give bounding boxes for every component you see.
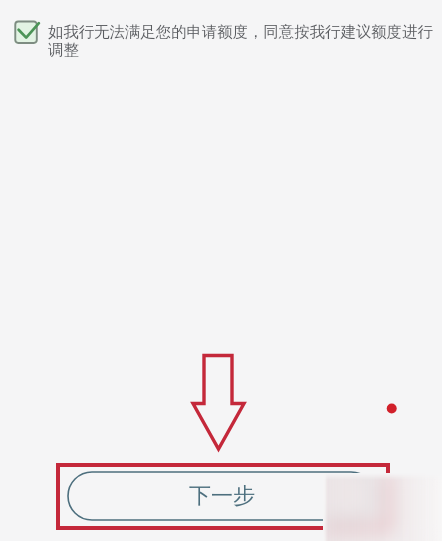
- other: 标记: [385, 402, 399, 416]
- staticText: 如我行无法满足您的申请额度，同意按我行建议额度进行调整: [48, 22, 440, 59]
- other: 同意调整额度: [13, 20, 39, 46]
- staticText: 下一步: [189, 482, 255, 510]
- button[interactable]: 下一步: [67, 471, 376, 521]
- button[interactable]: 同意调整额度: [13, 19, 440, 59]
